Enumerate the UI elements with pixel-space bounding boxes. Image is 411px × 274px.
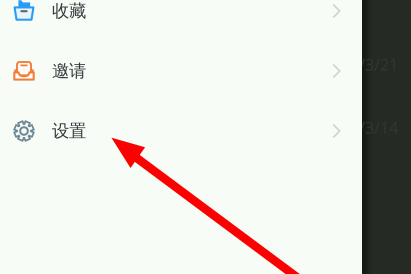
staticText: 邀请	[52, 60, 86, 82]
button[interactable]: 收藏	[0, 0, 362, 41]
button[interactable]: 设置	[0, 101, 362, 161]
button[interactable]: 邀请	[0, 41, 362, 101]
staticText: 收藏	[52, 0, 86, 22]
staticText: /3/21	[359, 54, 398, 75]
staticText: 设置	[52, 120, 86, 142]
staticText: /3/14	[359, 117, 398, 138]
